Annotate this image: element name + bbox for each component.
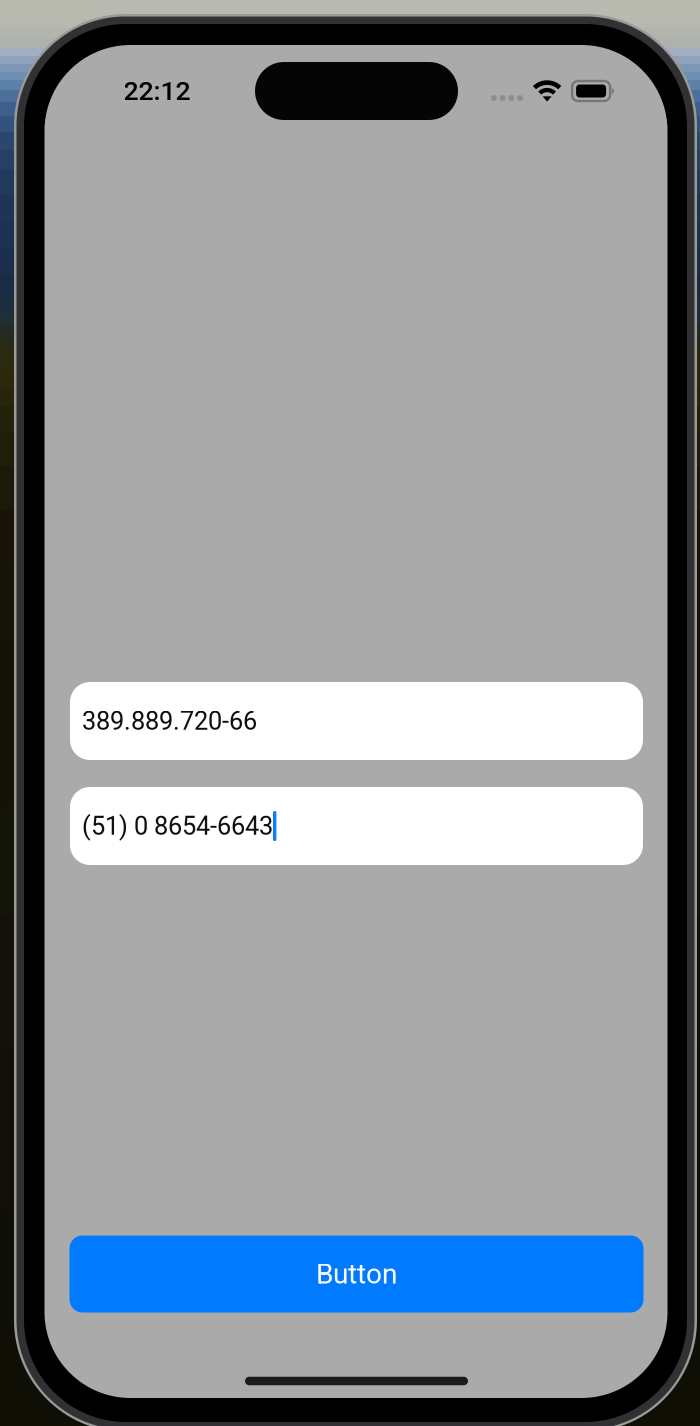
button[interactable]: Button	[69, 1235, 643, 1312]
staticText: (51) 0 8654-6643	[82, 811, 273, 841]
staticText: Button	[316, 1258, 397, 1290]
staticText: 389.889.720-66	[82, 706, 257, 736]
staticText: 22:12	[123, 75, 190, 107]
